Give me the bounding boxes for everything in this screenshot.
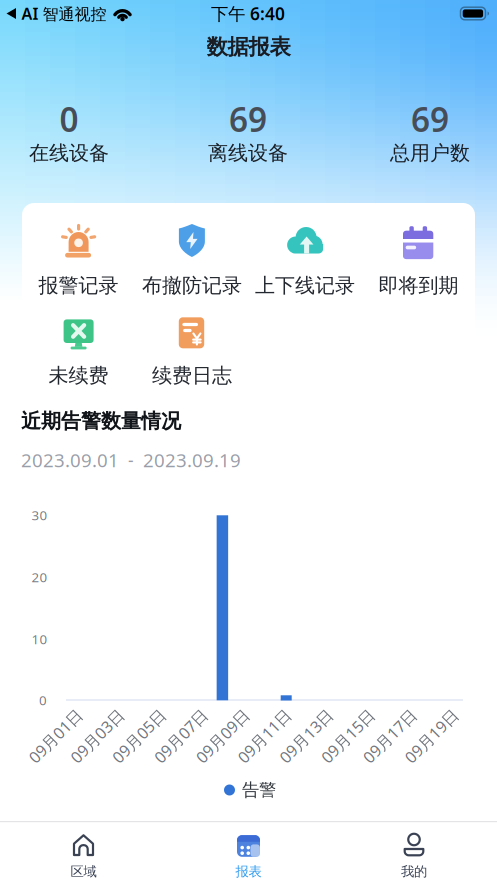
button[interactable]: 报警记录 — [22, 216, 135, 308]
staticText: 09月01日 — [21, 725, 89, 747]
button[interactable]: 报表 — [188, 821, 308, 883]
staticText: 09月15日 — [314, 725, 382, 747]
button[interactable]: 上下线记录 — [249, 216, 362, 308]
staticText: AI 智通视控 — [21, 3, 106, 24]
staticText: 上下线记录 — [255, 273, 355, 298]
staticText: 09月09日 — [189, 725, 257, 747]
staticText: 09月19日 — [397, 725, 465, 747]
staticText: 布撤防记录 — [142, 273, 242, 298]
staticText: 10 — [31, 630, 47, 648]
staticText: 即将到期 — [378, 273, 458, 298]
staticText: 09月13日 — [272, 725, 340, 747]
staticText: 数据报表 — [206, 34, 290, 60]
staticText: 30 — [31, 506, 47, 524]
button[interactable]: 续费日志 — [135, 306, 248, 398]
staticText: 69 — [411, 97, 449, 141]
button[interactable]: 返回 AI 智通视控 — [6, 0, 133, 26]
staticText: 近期告警数量情况 — [21, 409, 181, 433]
staticText: 2023.09.01 — [21, 448, 119, 472]
staticText: 总用户数 — [390, 141, 470, 165]
staticText: 未续费 — [49, 363, 109, 388]
staticText: 09月17日 — [356, 725, 424, 747]
staticText: 2023.09.19 — [143, 448, 241, 472]
staticText: 离线设备 — [208, 141, 288, 165]
button[interactable]: 我的 — [354, 821, 474, 883]
button[interactable]: 布撤防记录 — [135, 216, 248, 308]
staticText: 09月07日 — [147, 725, 215, 747]
button[interactable]: 未续费 — [22, 306, 135, 398]
staticText: 我的 — [401, 863, 427, 880]
staticText: 下午 6:40 — [211, 2, 285, 25]
staticText: 区域 — [70, 863, 96, 880]
staticText: 09月05日 — [105, 725, 173, 747]
staticText: 报表 — [235, 863, 261, 880]
staticText: 20 — [31, 568, 47, 586]
button[interactable]: 即将到期 — [362, 216, 475, 308]
staticText: 在线设备 — [29, 141, 109, 165]
staticText: 69 — [229, 97, 267, 141]
staticText: - — [128, 448, 134, 471]
staticText: 报警记录 — [39, 273, 119, 298]
staticText: 09月11日 — [230, 725, 298, 747]
staticText: 告警 — [242, 779, 276, 801]
button[interactable]: 区域 — [23, 821, 143, 883]
staticText: 09月03日 — [63, 725, 131, 747]
staticText: 续费日志 — [152, 363, 232, 388]
staticText: 0 — [59, 97, 78, 141]
staticText: 0 — [39, 691, 47, 709]
